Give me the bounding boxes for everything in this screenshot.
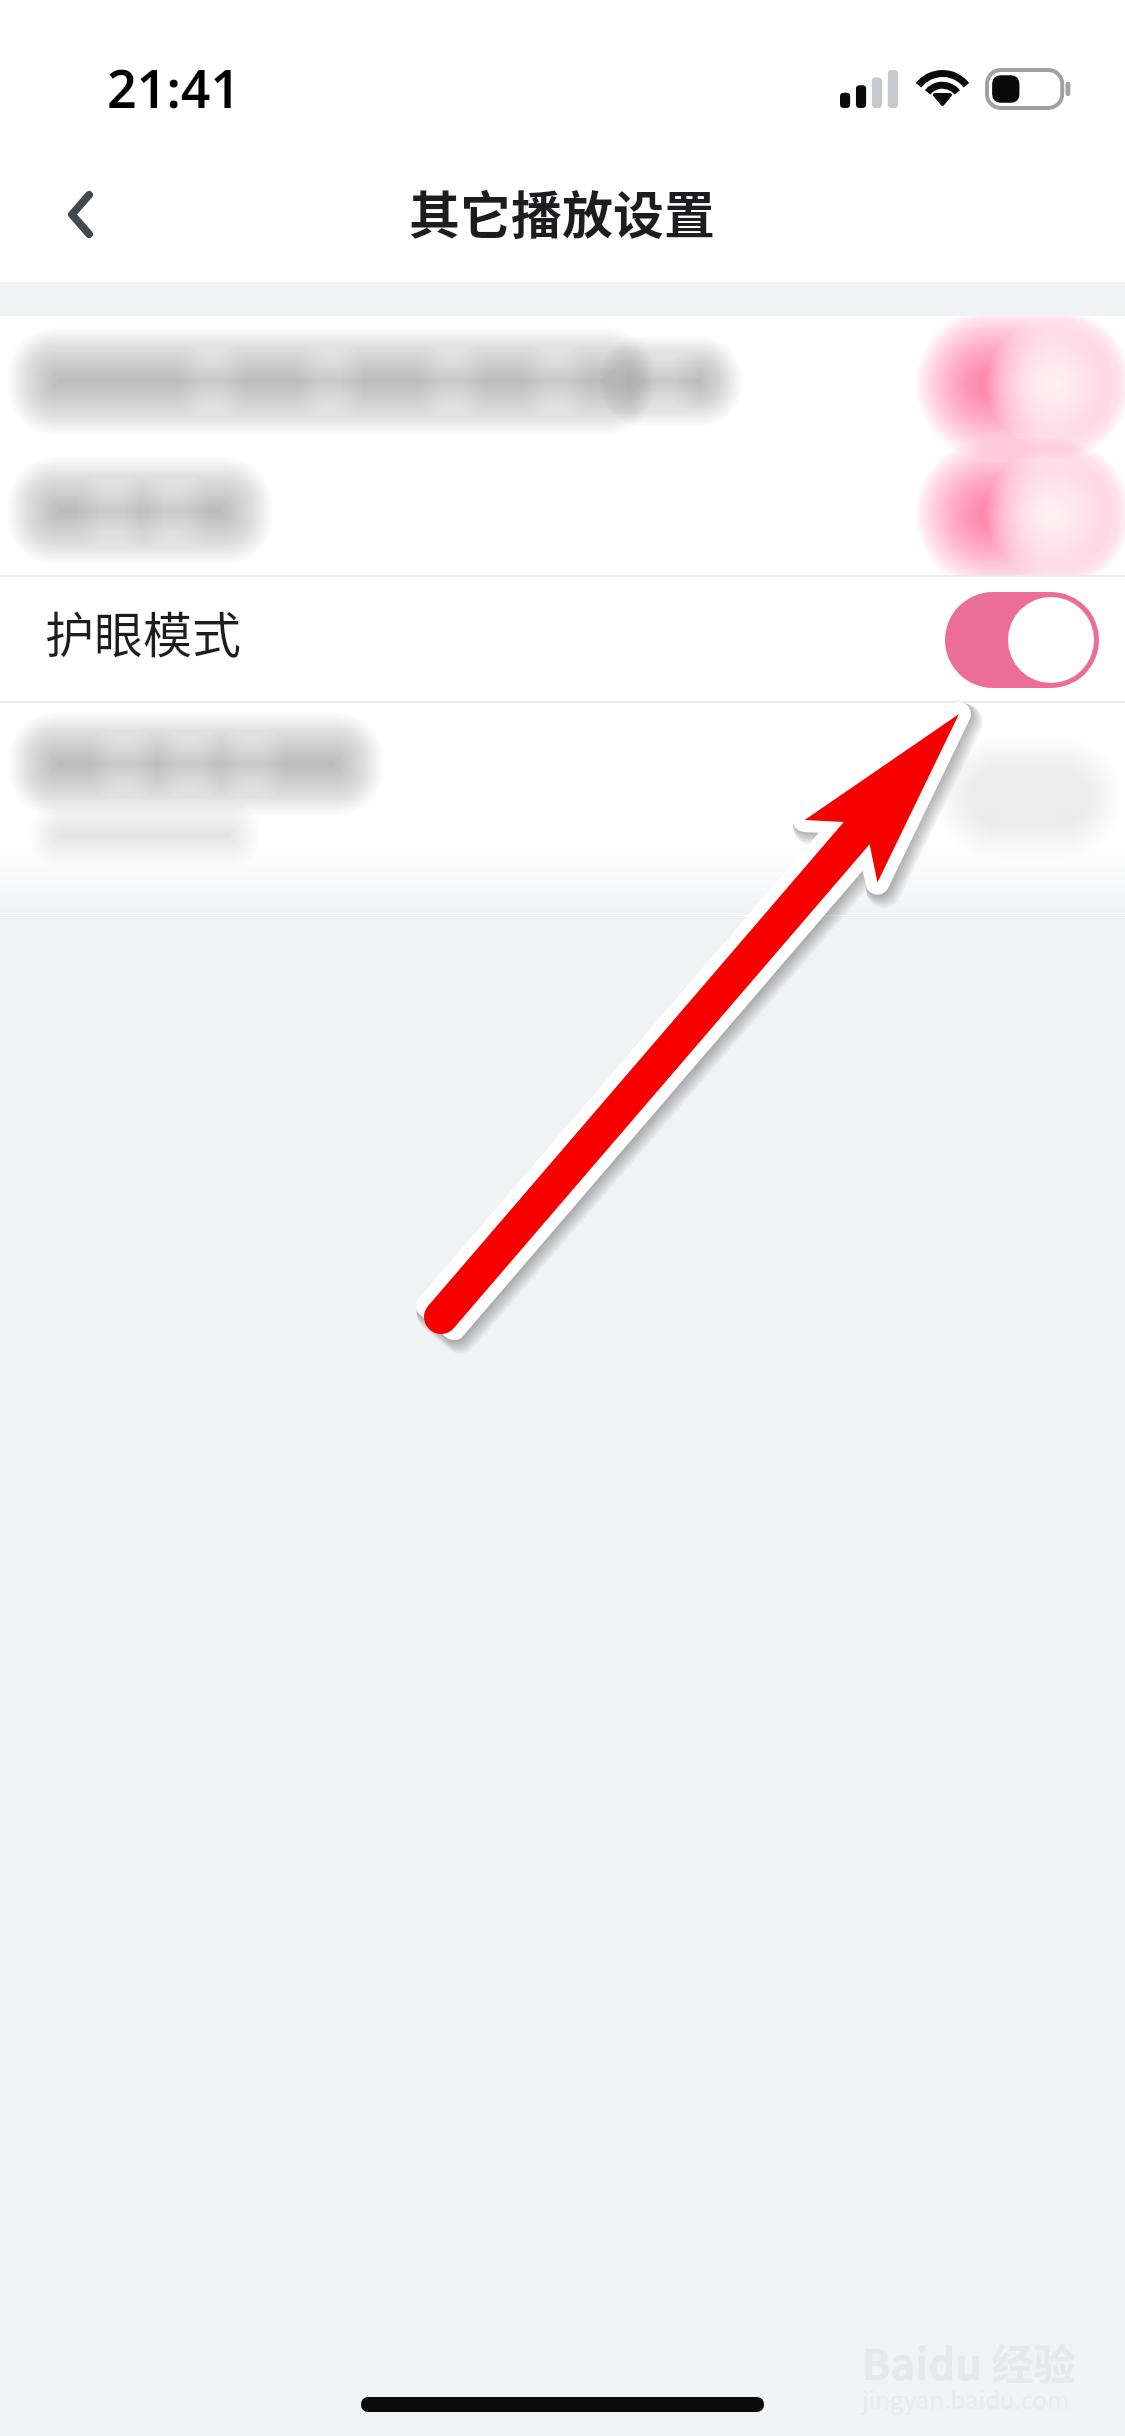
button[interactable]: 播放设置项 bbox=[0, 446, 1125, 575]
button[interactable]: 播放设置项 bbox=[0, 316, 1125, 446]
staticText: 护眼模式 bbox=[45, 596, 242, 667]
staticText: Baidu 经验 bbox=[862, 2331, 1076, 2392]
button[interactable]: 播放设置项 bbox=[0, 701, 1125, 869]
staticText: 其它播放设置 bbox=[409, 175, 716, 249]
button[interactable]: 护眼模式 bbox=[0, 575, 1125, 701]
button[interactable]: Back bbox=[5, 143, 155, 285]
staticText: 21:41 bbox=[107, 52, 241, 123]
button[interactable]: 护眼模式 switch, on bbox=[945, 592, 1099, 688]
